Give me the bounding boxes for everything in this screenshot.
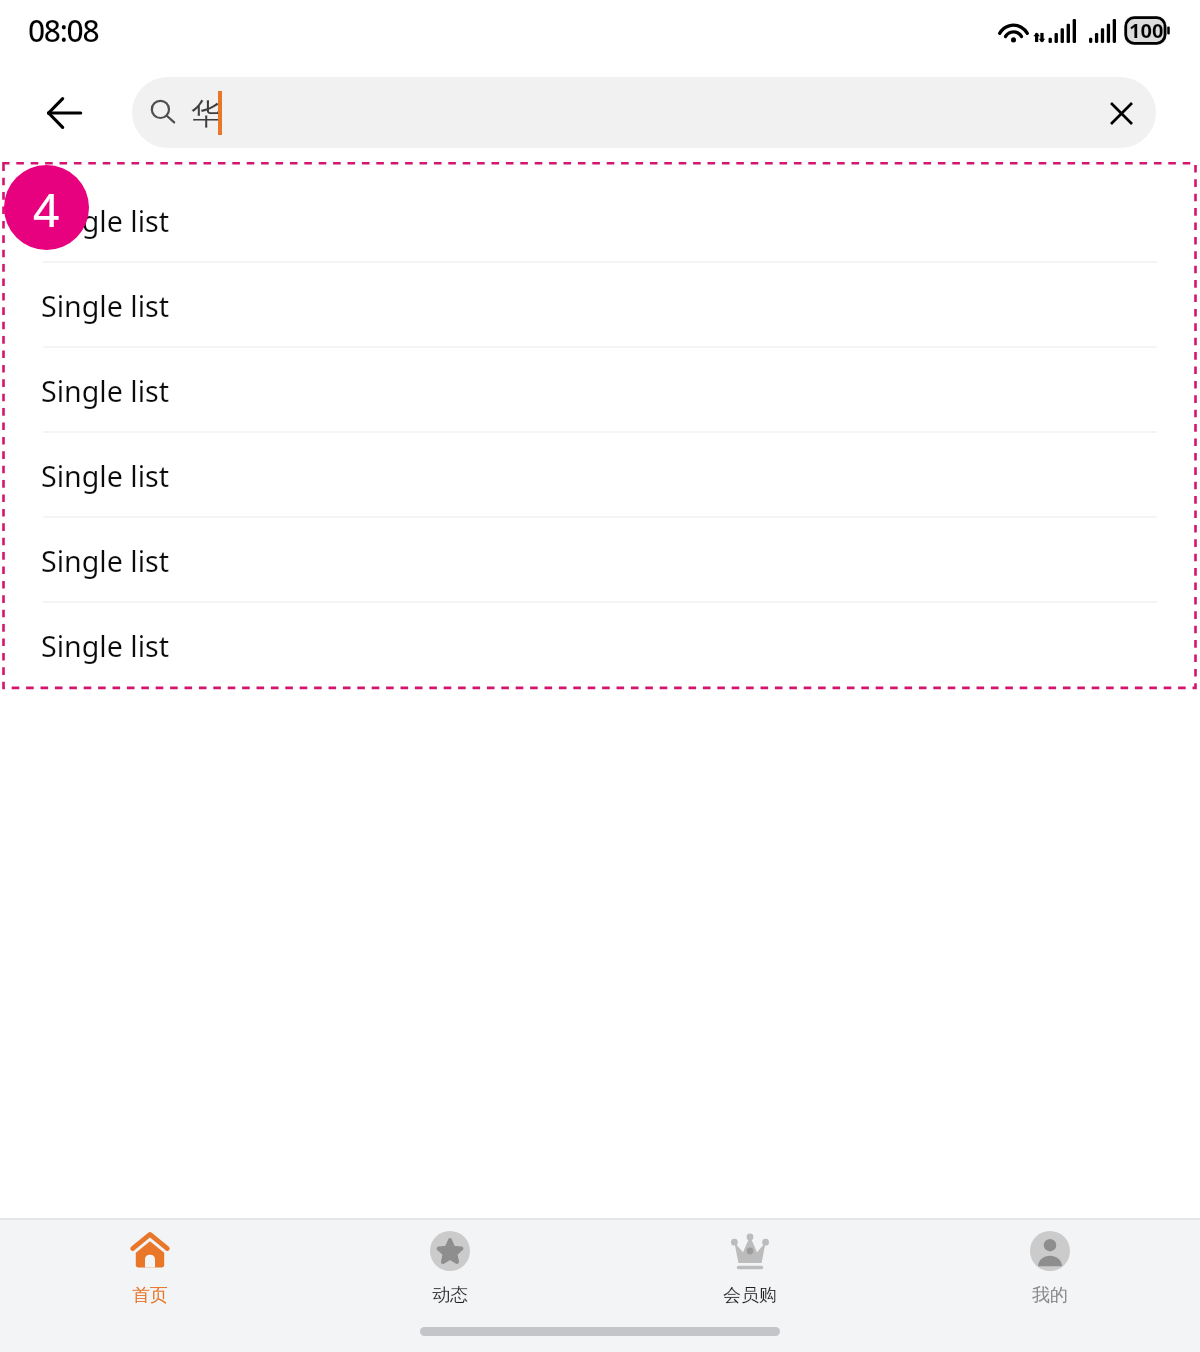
staticText: Single list [41,541,170,580]
button[interactable]: 4 [4,165,89,250]
staticText: 华 [191,95,221,133]
staticText: Single list [41,626,170,665]
staticText: Single list [41,371,170,410]
button[interactable]: Single list [0,263,1200,348]
button[interactable]: Single list [0,518,1200,603]
button[interactable]: 我的 [900,1218,1200,1352]
button[interactable]: Single list [0,348,1200,433]
staticText: Single list [41,201,170,240]
button[interactable]: 动态 [300,1218,600,1352]
staticText: 08:08 [28,10,99,51]
staticText: 100 [1129,17,1164,44]
button[interactable]: Single list [0,603,1200,688]
button[interactable]: 会员购 [600,1218,900,1352]
button[interactable]: Back [24,73,104,153]
staticText: Single list [41,456,170,495]
staticText: 首页 [132,1284,168,1307]
staticText: 会员购 [723,1284,777,1307]
button[interactable]: Single list [0,178,1200,263]
staticText: Single list [41,286,170,325]
staticText: 我的 [1032,1284,1068,1307]
button[interactable]: Clear search [1090,82,1152,144]
staticText: 动态 [432,1284,468,1307]
button[interactable]: Single list [0,433,1200,518]
staticText: 4 [33,178,60,241]
button[interactable]: 华 [132,77,1156,148]
button[interactable]: 首页 [0,1218,300,1352]
